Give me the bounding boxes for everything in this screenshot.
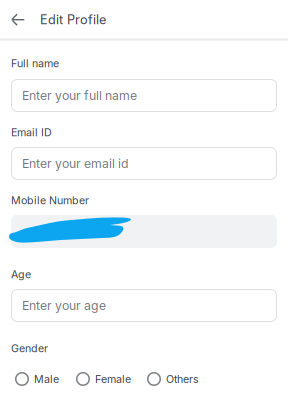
staticText: Enter your email id xyxy=(22,156,129,171)
staticText: Age xyxy=(11,268,31,281)
button[interactable]: Male xyxy=(15,372,59,386)
button[interactable]: Enter your email id xyxy=(11,147,277,180)
button[interactable]: Female xyxy=(76,372,131,386)
staticText: Female xyxy=(95,372,131,385)
button[interactable]: Back xyxy=(11,10,25,29)
staticText: Gender xyxy=(11,342,48,355)
staticText: Male xyxy=(34,372,59,385)
staticText: Email ID xyxy=(11,126,52,139)
button[interactable]: Others xyxy=(147,372,199,386)
button[interactable]: Enter your age xyxy=(11,289,277,322)
staticText: Edit Profile xyxy=(40,12,106,27)
staticText: Enter your full name xyxy=(22,88,137,103)
staticText: Others xyxy=(166,372,199,385)
staticText: Mobile Number xyxy=(11,194,89,207)
staticText: Enter your age xyxy=(22,298,106,313)
staticText: Full name xyxy=(11,57,59,70)
button[interactable]: Enter your full name xyxy=(11,79,277,112)
